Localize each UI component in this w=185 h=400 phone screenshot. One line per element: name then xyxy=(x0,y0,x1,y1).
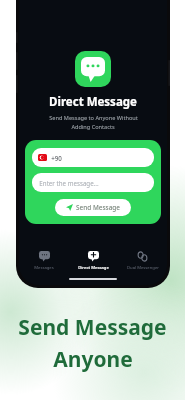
staticText: Direct Message xyxy=(49,94,137,110)
staticText: Messages xyxy=(34,265,54,271)
staticText: Send Message to Anyone Without xyxy=(49,114,138,122)
staticText: Dual Messenger xyxy=(127,265,159,271)
button[interactable]: Enter the message... xyxy=(32,173,154,192)
staticText: Send Message xyxy=(76,203,120,212)
staticText: Direct Message xyxy=(78,265,109,271)
button[interactable]: Direct Message app icon xyxy=(75,51,111,87)
staticText: +90 xyxy=(51,154,62,162)
button[interactable]: +90 xyxy=(32,148,154,167)
staticText: Adding Contacts xyxy=(71,123,115,131)
staticText: Enter the message... xyxy=(39,179,99,187)
staticText: Send Message xyxy=(18,313,167,342)
button[interactable]: Send Message xyxy=(55,199,131,216)
button[interactable]: Direct Message xyxy=(69,244,118,278)
button[interactable]: Messages xyxy=(19,244,69,278)
staticText: Anyone xyxy=(53,345,133,374)
button[interactable]: Dual Messenger xyxy=(118,244,167,278)
